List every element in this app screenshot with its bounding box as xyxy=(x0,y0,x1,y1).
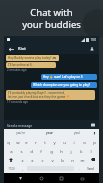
button[interactable]: v xyxy=(47,155,57,164)
staticText: I'll be online at 5. xyxy=(8,63,33,67)
staticText: t xyxy=(44,139,46,145)
button[interactable]: I'll be online at 5. xyxy=(6,62,56,68)
button[interactable]: Shift xyxy=(4,155,17,164)
staticText: Which champion are you going to play? xyxy=(33,83,91,87)
button[interactable]: l xyxy=(86,146,96,155)
button[interactable]: k xyxy=(76,146,86,155)
staticText: o xyxy=(83,139,86,145)
button[interactable]: Back xyxy=(7,45,15,53)
button[interactable]: Send a message xyxy=(7,123,89,127)
button[interactable]: j xyxy=(66,146,76,155)
button[interactable]: n xyxy=(67,155,77,164)
button[interactable]: q xyxy=(4,137,13,146)
button[interactable]: t xyxy=(40,137,49,146)
button[interactable]: ?123 xyxy=(5,164,18,173)
button[interactable]: Delete xyxy=(87,155,99,164)
button[interactable]: Back xyxy=(16,174,25,183)
button[interactable]: Hey Buddy wanna play today? 🎮 xyxy=(6,55,59,61)
staticText: k xyxy=(80,148,83,154)
button[interactable]: Which champion are you going to play? xyxy=(31,82,97,88)
button[interactable]: y xyxy=(49,137,59,146)
staticText: d xyxy=(30,148,33,154)
button[interactable]: Keyboard xyxy=(78,174,87,183)
button[interactable]: , xyxy=(18,164,26,173)
staticText: c xyxy=(41,157,44,163)
staticText: you're xyxy=(16,131,25,135)
staticText: u xyxy=(63,139,66,145)
staticText: Send a message xyxy=(7,123,33,127)
staticText: ?123 xyxy=(8,167,15,171)
staticText: youl xyxy=(74,131,80,135)
button[interactable]: e xyxy=(22,137,31,146)
staticText: j xyxy=(70,148,72,154)
staticText: v xyxy=(51,157,54,163)
staticText: Hey 👋 sure! Let's play on 5 xyxy=(43,75,83,79)
staticText: Send xyxy=(87,167,94,171)
button[interactable]: f xyxy=(36,146,46,155)
button[interactable]: p xyxy=(89,137,99,146)
button[interactable]: you're xyxy=(6,129,35,137)
staticText: x xyxy=(31,157,34,163)
button[interactable]: d xyxy=(26,146,36,155)
staticText: b xyxy=(61,157,64,163)
staticText: 100 xyxy=(90,38,96,42)
staticText: y xyxy=(53,139,56,145)
staticText: s xyxy=(20,148,23,154)
staticText: Chat with your buddies xyxy=(0,6,103,31)
staticText: a xyxy=(10,148,13,154)
staticText: m xyxy=(80,157,85,163)
button[interactable]: Hey 👋 sure! Let's play on 5 xyxy=(41,74,97,80)
button[interactable]: Home xyxy=(37,174,46,183)
staticText: . xyxy=(79,166,80,171)
staticText: Riot xyxy=(18,46,26,52)
staticText: r xyxy=(35,139,37,145)
button[interactable]: a xyxy=(7,146,16,155)
staticText: i xyxy=(73,139,75,145)
staticText: z xyxy=(21,157,24,163)
button[interactable]: h xyxy=(56,146,66,155)
button[interactable]: s xyxy=(16,146,26,155)
button[interactable]: m xyxy=(77,155,87,164)
button[interactable]: u xyxy=(59,137,69,146)
staticText: g xyxy=(50,148,53,154)
staticText: q xyxy=(7,139,10,145)
staticText: I'll probably playing Kayn? - nevermind,… xyxy=(8,91,70,99)
button[interactable]: your xyxy=(35,129,63,137)
button[interactable]: g xyxy=(46,146,56,155)
staticText: Hey Buddy wanna play today? 🎮 xyxy=(8,56,57,60)
button[interactable]: b xyxy=(57,155,67,164)
button[interactable]: w xyxy=(13,137,22,146)
staticText: 2 minutes ago xyxy=(7,68,27,72)
staticText: your xyxy=(46,131,53,135)
staticText: , xyxy=(22,166,23,171)
button[interactable]: youl xyxy=(63,129,91,137)
button[interactable]: o xyxy=(79,137,89,146)
button[interactable]: x xyxy=(27,155,37,164)
button[interactable]: i xyxy=(69,137,79,146)
staticText: 17 seconds ago xyxy=(7,100,29,104)
staticText: f xyxy=(40,148,42,154)
button[interactable]: Voice input xyxy=(91,129,97,137)
button[interactable]: c xyxy=(37,155,47,164)
staticText: w xyxy=(16,139,20,145)
button[interactable]: r xyxy=(31,137,40,146)
button[interactable]: z xyxy=(17,155,27,164)
button[interactable]: Recents xyxy=(57,174,66,183)
staticText: n xyxy=(71,157,74,163)
staticText: e xyxy=(25,139,28,145)
button[interactable]: People xyxy=(88,45,96,53)
button[interactable]: Attach xyxy=(89,121,96,128)
staticText: l xyxy=(90,148,92,154)
staticText: h xyxy=(60,148,63,154)
button[interactable]: I'll probably playing Kayn? - nevermind,… xyxy=(6,90,95,100)
staticText: p xyxy=(93,139,96,145)
button[interactable]: Send xyxy=(83,164,98,173)
